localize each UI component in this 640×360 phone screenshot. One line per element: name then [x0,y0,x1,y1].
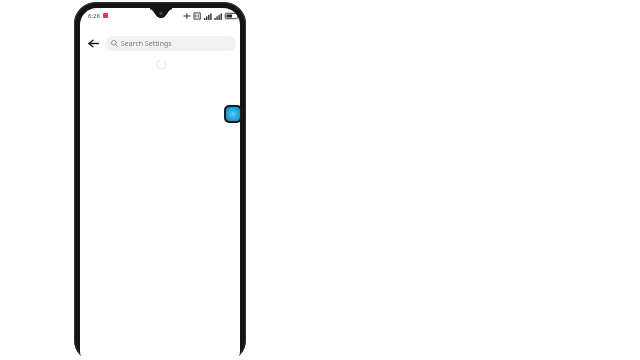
button[interactable]: App shortcut [226,107,240,121]
button[interactable]: Search Settings [105,36,236,51]
staticText: Search Settings [121,39,172,49]
staticText: 6:28 [88,12,100,20]
button[interactable]: Back [83,33,103,53]
